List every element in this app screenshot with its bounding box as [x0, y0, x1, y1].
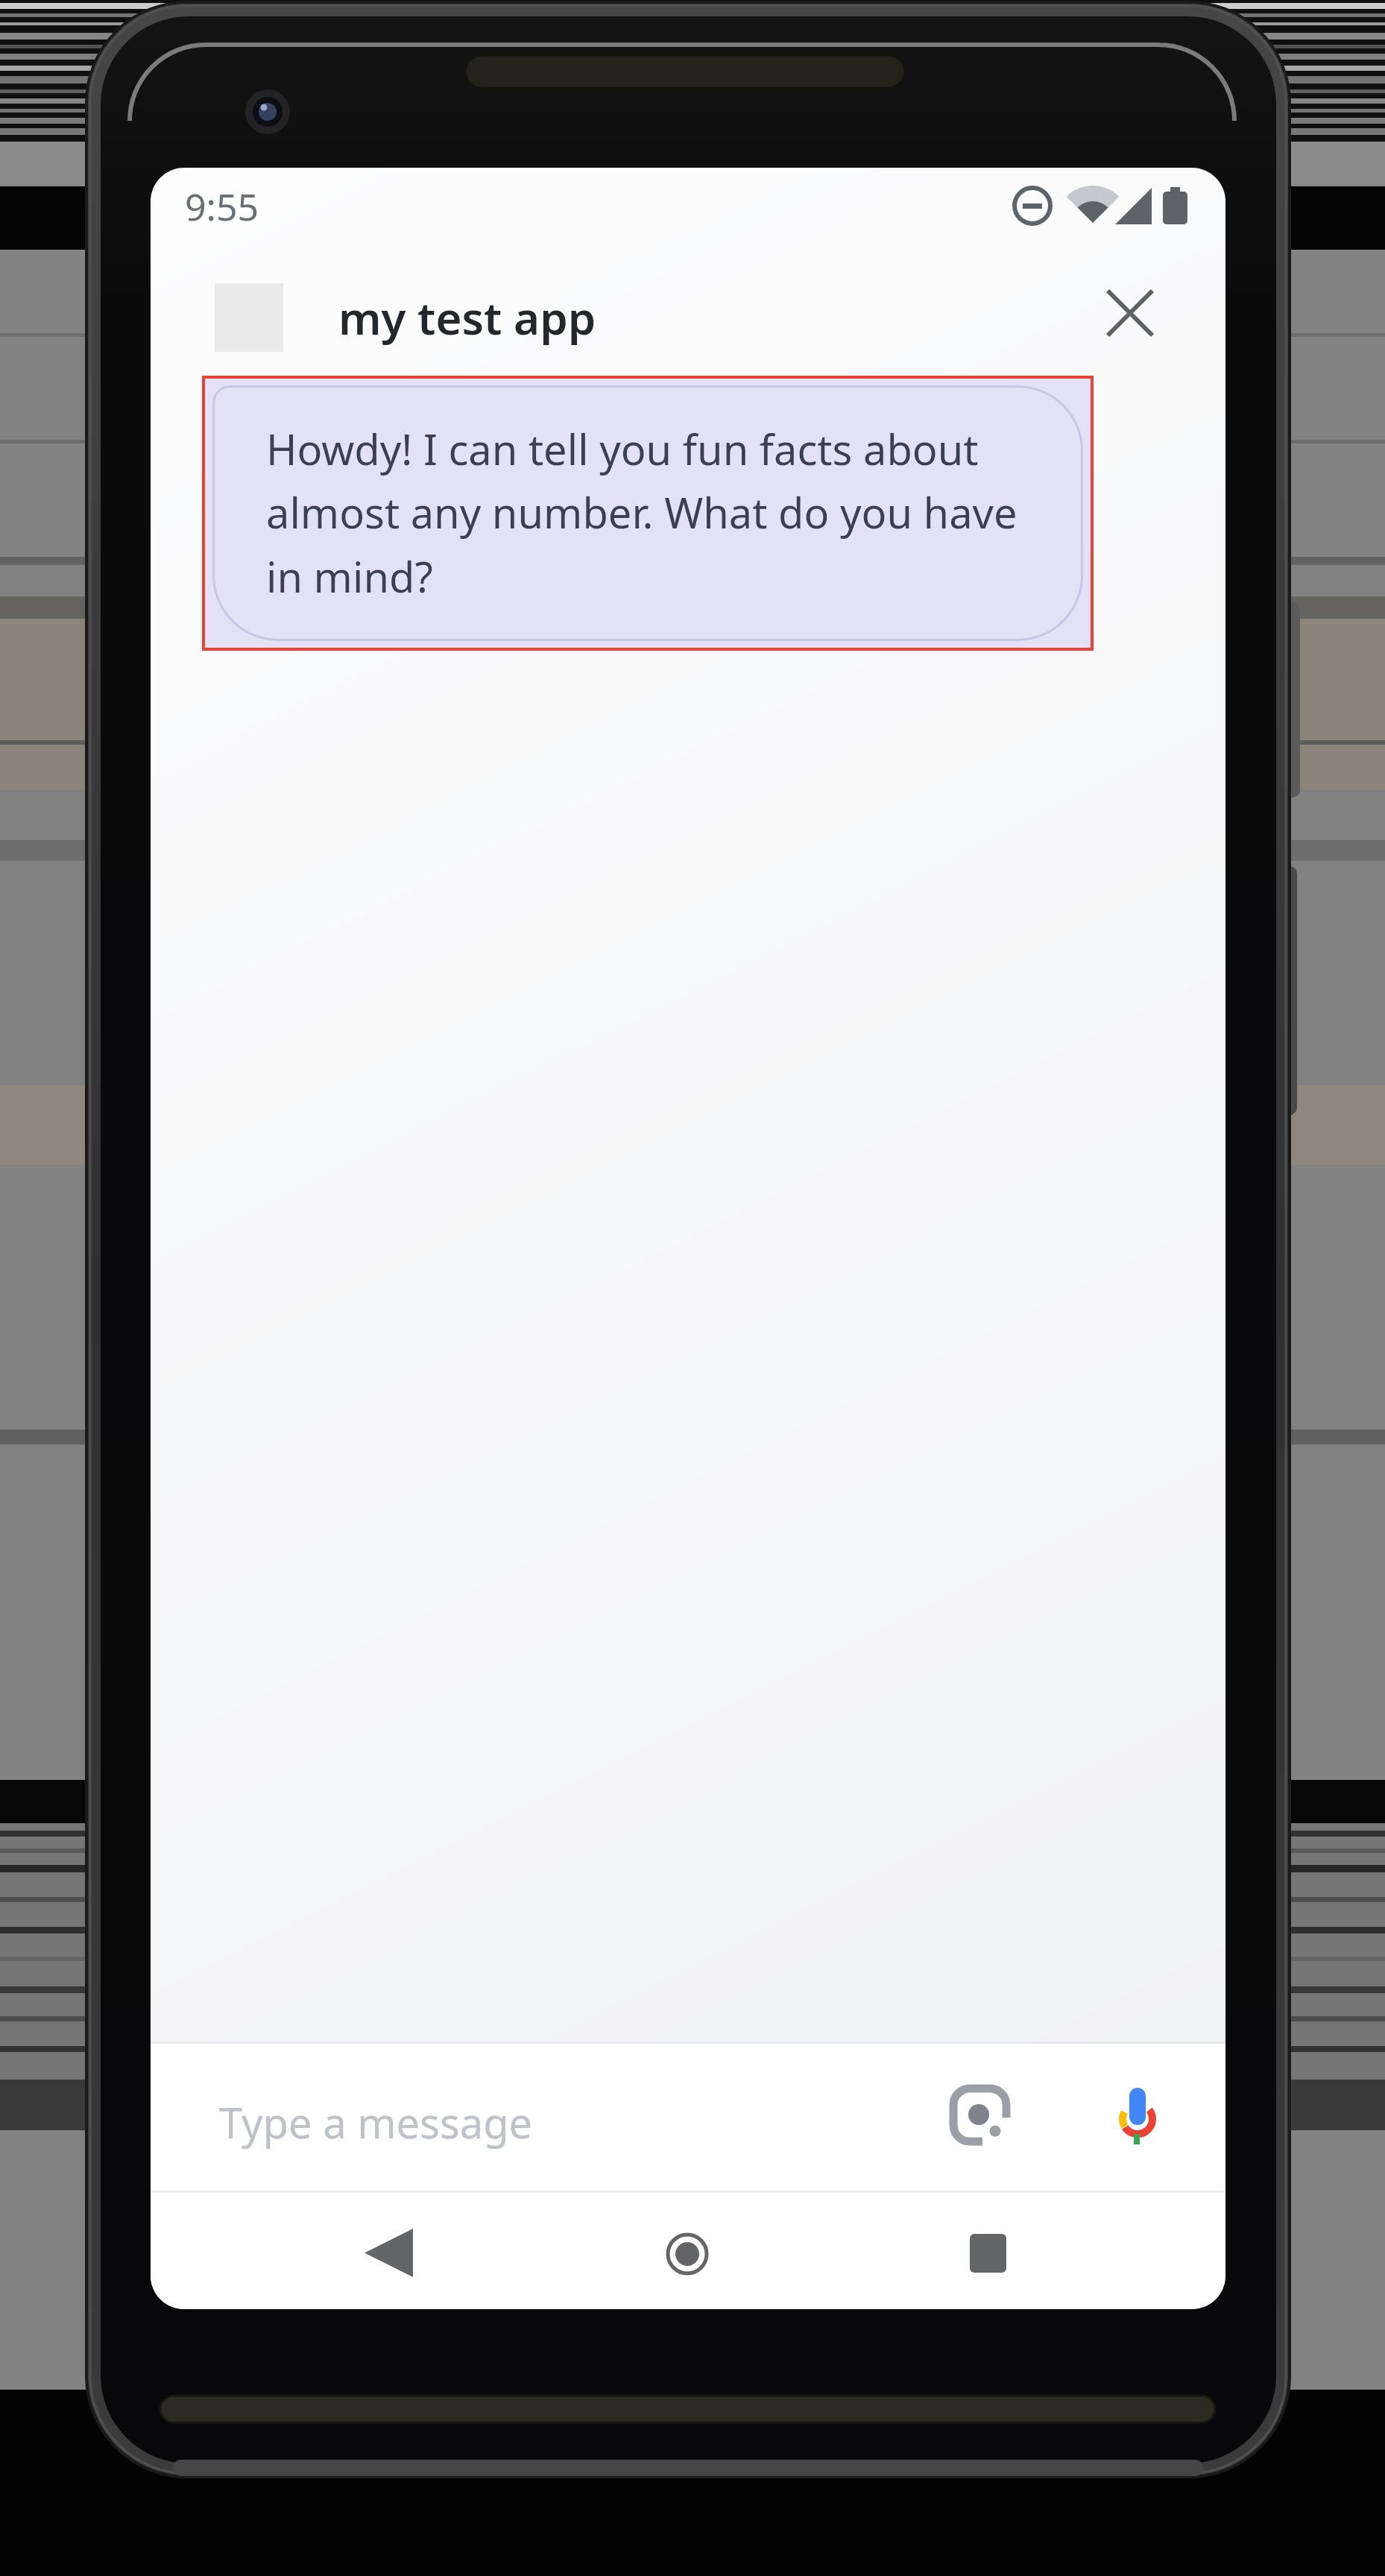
- button[interactable]: [941, 2076, 1018, 2153]
- button[interactable]: Howdy! I can tell you fun facts about al…: [202, 376, 1094, 651]
- button[interactable]: [341, 2206, 438, 2303]
- staticText: Type a message: [219, 2094, 533, 2150]
- button[interactable]: [1099, 282, 1161, 344]
- button[interactable]: Type a message: [195, 2061, 866, 2173]
- button[interactable]: [1105, 2072, 1172, 2154]
- staticText: Howdy! I can tell you fun facts about al…: [266, 420, 1018, 605]
- staticText: my test app: [338, 287, 596, 348]
- button[interactable]: [941, 2206, 1038, 2303]
- button[interactable]: [639, 2206, 736, 2303]
- staticText: 9:55: [185, 181, 259, 232]
